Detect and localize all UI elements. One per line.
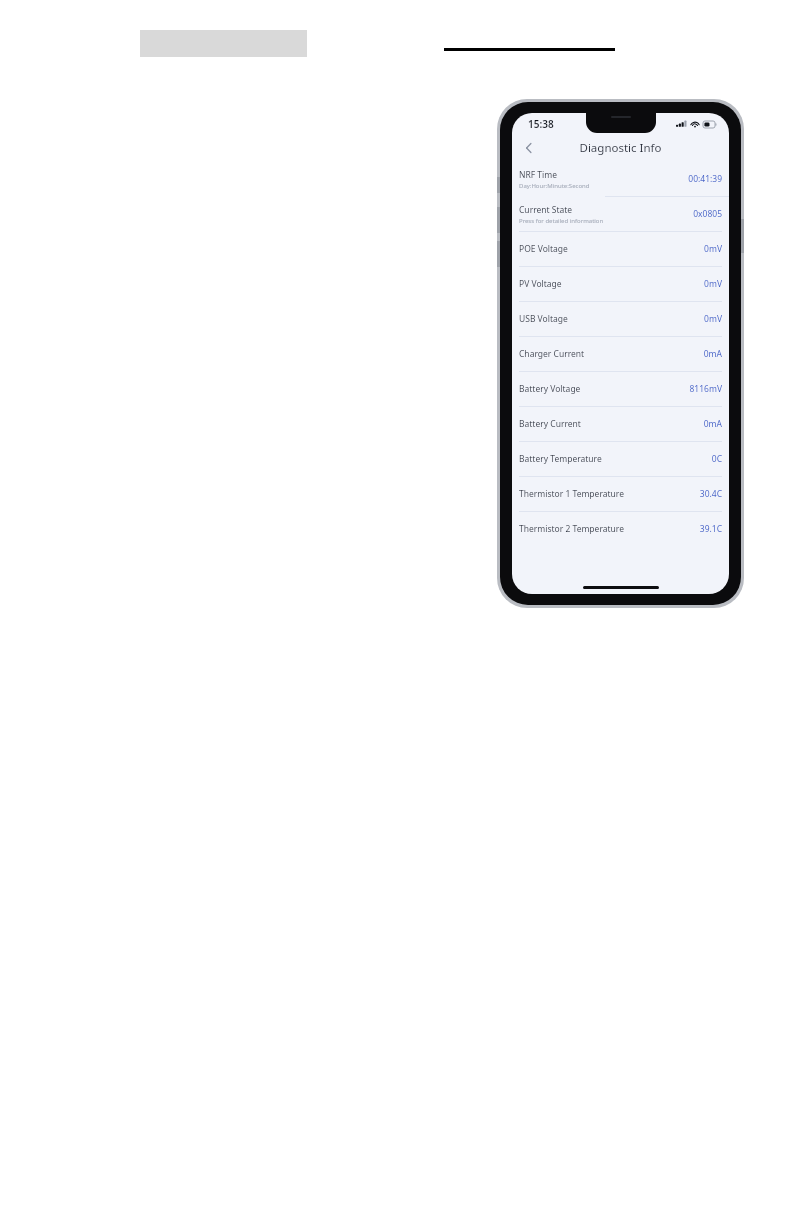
staticText: 0mV [704, 243, 722, 255]
button[interactable]: Thermistor 1 Temperature [512, 477, 729, 511]
button[interactable]: USB Voltage [512, 302, 729, 336]
staticText: Battery Current [519, 418, 581, 430]
button[interactable]: PV Voltage [512, 267, 729, 301]
staticText: Diagnostic Info [579, 140, 662, 156]
staticText: Thermistor 1 Temperature [519, 488, 624, 500]
button[interactable]: Battery Current [512, 407, 729, 441]
button[interactable]: NRF Time [512, 162, 729, 196]
staticText: 0mV [704, 278, 722, 290]
button[interactable]: Battery Voltage [512, 372, 729, 406]
staticText: 30.4C [699, 488, 722, 500]
button[interactable]: Current State [512, 197, 729, 231]
staticText: Charger Current [519, 348, 585, 360]
staticText: 0mV [704, 313, 722, 325]
staticText: POE Voltage [519, 243, 568, 255]
button[interactable]: Charger Current [512, 337, 729, 371]
staticText: 0C [711, 453, 722, 465]
staticText: Battery Voltage [519, 383, 581, 395]
staticText: 15:38 [528, 117, 554, 131]
staticText: NRF Time [519, 169, 558, 181]
staticText: 0mA [703, 418, 722, 430]
staticText: Battery Temperature [519, 453, 602, 465]
staticText: Thermistor 2 Temperature [519, 523, 624, 535]
staticText: 8116mV [689, 383, 722, 395]
staticText: 0mA [703, 348, 722, 360]
staticText: Press for detailed information [519, 217, 604, 225]
staticText: 39.1C [699, 523, 722, 535]
staticText: 0x0805 [693, 208, 722, 220]
staticText: PV Voltage [519, 278, 562, 290]
staticText: USB Voltage [519, 313, 568, 325]
button[interactable]: Back [516, 135, 542, 161]
button[interactable]: POE Voltage [512, 232, 729, 266]
staticText: Current State [519, 204, 573, 216]
button[interactable]: Thermistor 2 Temperature [512, 512, 729, 546]
button[interactable]: Battery Temperature [512, 442, 729, 476]
staticText: 00:41:39 [688, 173, 722, 185]
staticText: Day:Hour:Minute:Second [519, 182, 590, 190]
